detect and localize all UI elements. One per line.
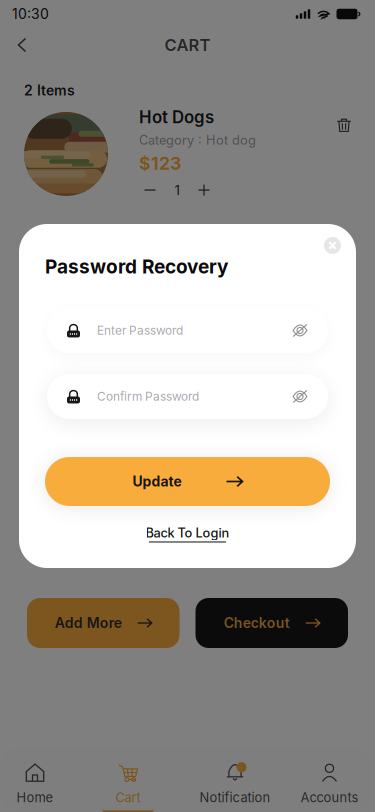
staticText: 10:30 bbox=[12, 5, 49, 22]
staticText: Back To Login bbox=[145, 525, 229, 540]
button[interactable]: Checkout bbox=[195, 598, 348, 648]
button[interactable]: Decrease quantity bbox=[139, 180, 161, 200]
staticText: Confirm Password bbox=[97, 389, 199, 404]
button[interactable]: Increase quantity bbox=[193, 180, 215, 200]
button[interactable]: Add More bbox=[27, 598, 179, 648]
button[interactable]: Remove item bbox=[333, 114, 355, 136]
staticText: CART bbox=[164, 35, 210, 55]
button[interactable]: Show password bbox=[290, 386, 310, 406]
staticText: Add More bbox=[55, 614, 122, 631]
staticText: Category : Hot dog bbox=[139, 132, 256, 148]
button[interactable]: Home bbox=[0, 748, 70, 812]
staticText: Notification bbox=[199, 790, 270, 805]
button[interactable]: Back bbox=[6, 29, 38, 61]
staticText: Hot Dogs bbox=[139, 107, 214, 127]
staticText: Accounts bbox=[300, 790, 358, 805]
button[interactable]: Update bbox=[45, 457, 330, 506]
staticText: $123 bbox=[139, 153, 181, 174]
staticText: Cart bbox=[115, 790, 140, 805]
button[interactable]: Close bbox=[324, 237, 341, 254]
staticText: 1 bbox=[174, 182, 179, 198]
button[interactable]: Notification bbox=[186, 748, 284, 812]
button[interactable]: Show password bbox=[290, 320, 310, 340]
staticText: Password Recovery bbox=[45, 255, 228, 278]
staticText: Checkout bbox=[224, 614, 290, 631]
button[interactable]: Accounts bbox=[284, 748, 375, 812]
staticText: 2 Items bbox=[24, 82, 75, 99]
staticText: Update bbox=[132, 473, 181, 490]
staticText: Enter Password bbox=[97, 323, 183, 338]
staticText: Home bbox=[16, 790, 53, 805]
button[interactable]: Back To Login bbox=[145, 525, 229, 542]
button[interactable]: Cart bbox=[70, 748, 186, 812]
